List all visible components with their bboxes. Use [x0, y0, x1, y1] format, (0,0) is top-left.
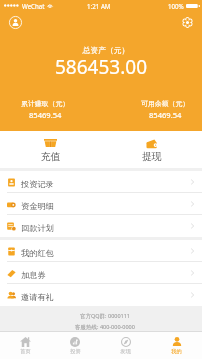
staticText: 投资 [70, 348, 81, 355]
button[interactable]: 资金明细 [0, 193, 202, 215]
staticText: 100% [168, 2, 184, 10]
staticText: 客服热线: 400-000-0000 [75, 323, 135, 331]
button[interactable]: 回款计划 [0, 215, 202, 237]
staticText: 我的红包 [21, 248, 54, 258]
button[interactable]: Settings [179, 14, 196, 31]
staticText: 首页 [20, 348, 31, 355]
staticText: 我的 [171, 348, 182, 355]
button[interactable]: 投资 [50, 332, 100, 359]
button[interactable]: 首页 [0, 332, 50, 359]
staticText: 85469.54 [149, 110, 182, 120]
button[interactable]: 发现 [100, 332, 151, 359]
staticText: 可用余额（元） [141, 99, 190, 108]
staticText: 发现 [120, 348, 131, 355]
staticText: 回款计划 [21, 223, 54, 233]
staticText: 586453.00 [0, 54, 202, 80]
button[interactable]: 提现 [101, 131, 202, 168]
staticText: 提现 [142, 151, 162, 163]
button[interactable]: 我的红包 [0, 240, 202, 262]
button[interactable]: Profile [7, 14, 24, 31]
staticText: 投资记录 [21, 179, 54, 189]
staticText: 85469.54 [29, 110, 62, 120]
staticText: 总资产（元） [5, 45, 202, 55]
button[interactable]: 充值 [0, 131, 101, 168]
staticText: 加息券 [21, 270, 46, 280]
staticText: 累计赚取（元） [21, 99, 70, 108]
button[interactable]: 我的 [151, 332, 202, 359]
staticText: 资金明细 [21, 201, 54, 211]
button[interactable]: 投资记录 [0, 171, 202, 193]
staticText: 官方QQ群: 0000111 [80, 312, 131, 320]
button[interactable]: 邀请有礼 [0, 284, 202, 306]
staticText: WeChat [22, 2, 45, 10]
staticText: 充值 [41, 151, 61, 163]
staticText: 1:21 AM [87, 2, 111, 10]
staticText: 邀请有礼 [21, 292, 54, 302]
button[interactable]: 加息券 [0, 262, 202, 284]
